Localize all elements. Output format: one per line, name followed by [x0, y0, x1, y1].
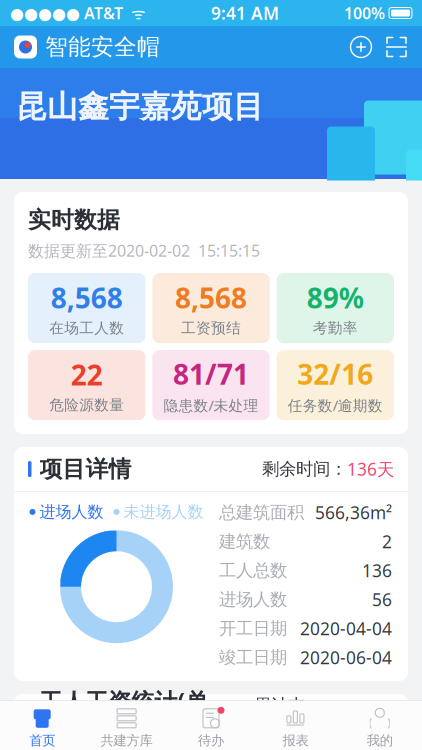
staticText: 危险源数量 — [49, 396, 124, 414]
button[interactable]: 添加 — [349, 35, 373, 59]
staticText: 开工日期 — [219, 618, 287, 639]
staticText: 32/16 — [297, 355, 373, 392]
staticText: 总建筑面积 — [219, 502, 304, 523]
staticText: 我的 — [367, 732, 393, 749]
staticText: 待办 — [198, 732, 224, 749]
button[interactable]: 首页 — [0, 707, 84, 749]
staticText: 共建方库 — [101, 732, 153, 749]
button[interactable]: 8,568 — [28, 273, 145, 343]
staticText: 8,568 — [175, 279, 247, 316]
button[interactable]: 智能安全帽 — [14, 33, 160, 61]
staticText: 报表 — [282, 732, 308, 749]
staticText: 工人总数 — [219, 560, 287, 581]
staticText: 建筑数 — [219, 531, 270, 552]
staticText: 智能安全帽 — [45, 33, 160, 61]
button[interactable]: 81/71 — [152, 350, 270, 420]
staticText: 2020-06-04 — [300, 646, 392, 669]
button[interactable]: 待办 — [169, 707, 253, 749]
staticText: 2 — [382, 530, 392, 553]
staticText: 工人工资统计(单位:万元) — [39, 686, 208, 746]
staticText: 566,36m² — [315, 501, 392, 524]
button[interactable]: 共建方库 — [84, 707, 169, 749]
staticText: 136 — [362, 559, 392, 582]
staticText: 100% — [344, 2, 385, 24]
staticText: 剩余时间： — [262, 458, 347, 480]
staticText: 竣工日期 — [219, 647, 287, 668]
button[interactable]: 32/16 — [277, 350, 394, 420]
staticText: 考勤率 — [313, 319, 358, 337]
staticText: 56 — [372, 588, 392, 611]
button[interactable]: 扫一扫 — [385, 36, 408, 58]
staticText: 隐患数/未处理 — [163, 395, 258, 415]
staticText: 昆山鑫宇嘉苑项目 — [16, 88, 264, 126]
staticText: 进场人数 — [39, 502, 103, 522]
staticText: 进场人数 — [219, 589, 287, 610]
staticText: ●●●●● AT&T ᯤ — [10, 2, 146, 24]
staticText: 任务数/逾期数 — [288, 395, 383, 415]
staticText: 9:41 AM — [211, 1, 279, 24]
button[interactable]: 我的 — [338, 707, 422, 749]
staticText: 2020-04-04 — [300, 617, 392, 640]
staticText: 工资预结 — [181, 319, 241, 337]
staticText: 89% — [307, 279, 364, 316]
staticText: 首页 — [29, 732, 55, 749]
staticText: 66,625万元 — [305, 705, 394, 728]
staticText: 8,568 — [51, 279, 123, 316]
button[interactable]: 22 — [28, 350, 145, 420]
button[interactable]: 报表 — [253, 707, 338, 749]
button[interactable]: 89% — [277, 273, 394, 343]
staticText: 数据更新至2020-02-02 15:15:15 — [28, 240, 260, 261]
staticText: 81/71 — [173, 355, 249, 392]
staticText: 22 — [71, 356, 103, 393]
staticText: 136天 — [347, 458, 394, 481]
staticText: 未进场人数 — [123, 502, 203, 522]
staticText: 累计支付： — [254, 695, 305, 737]
button[interactable]: 8,568 — [152, 273, 270, 343]
staticText: 在场工人数 — [49, 319, 124, 337]
staticText: 项目详情 — [39, 455, 131, 483]
staticText: 实时数据 — [28, 206, 120, 234]
